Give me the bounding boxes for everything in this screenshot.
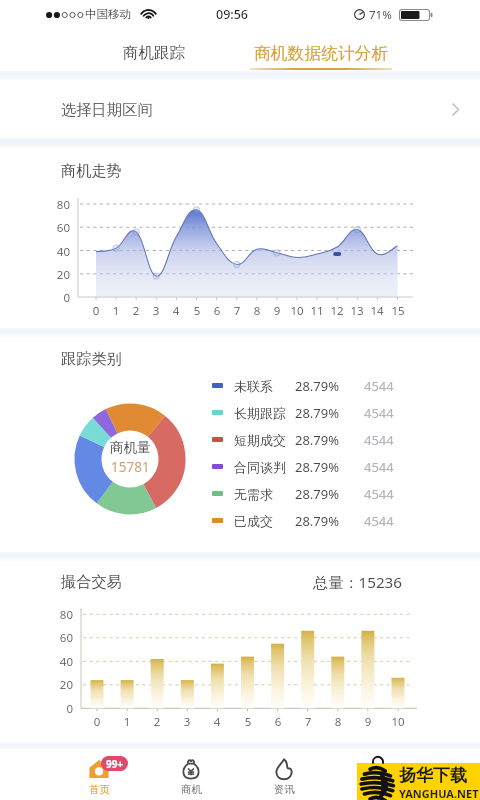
staticText: 无需求 xyxy=(234,486,295,502)
button[interactable]: 资讯 xyxy=(256,749,312,800)
staticText: 15 xyxy=(388,303,408,319)
staticText: 商机 xyxy=(181,783,202,796)
staticText: 28.79% xyxy=(295,377,364,395)
staticText: 未联系 xyxy=(234,378,295,394)
button[interactable]: 商机数据统计分析 xyxy=(245,34,397,72)
staticText: 09:56 xyxy=(216,6,249,23)
staticText: 商机量 xyxy=(110,439,151,456)
staticText: 合同谈判 xyxy=(234,459,295,475)
button[interactable]: 商机跟踪 xyxy=(112,34,196,72)
staticText: 5 xyxy=(236,714,260,730)
staticText: 跟踪类别 xyxy=(61,349,122,368)
staticText: 14 xyxy=(367,303,387,319)
staticText: 选择日期区间 xyxy=(61,100,153,119)
staticText: 已成交 xyxy=(234,513,295,529)
staticText: 首页 xyxy=(89,783,110,796)
staticText: 5 xyxy=(187,303,207,319)
button[interactable]: 合同谈判 xyxy=(212,453,394,480)
staticText: 4544 xyxy=(364,485,394,503)
staticText: 7 xyxy=(227,303,247,319)
other: 展开 xyxy=(451,102,460,117)
staticText: YANGHUA.NET xyxy=(399,786,479,800)
staticText: 10 xyxy=(287,303,307,319)
staticText: 20 xyxy=(43,677,73,693)
staticText: 28.79% xyxy=(295,512,364,530)
button[interactable]: 已成交 xyxy=(212,507,394,534)
staticText: 80 xyxy=(43,607,73,623)
staticText: 3 xyxy=(175,714,199,730)
staticText: 13 xyxy=(347,303,367,319)
staticText: 短期成交 xyxy=(234,432,295,448)
staticText: 撮合交易 xyxy=(61,572,122,591)
staticText: 商机走势 xyxy=(61,161,122,180)
staticText: 28.79% xyxy=(295,458,364,476)
staticText: 4544 xyxy=(364,377,394,395)
staticText: 总量：15236 xyxy=(313,572,402,593)
staticText: 7 xyxy=(296,714,320,730)
staticText: 10 xyxy=(386,714,410,730)
staticText: 长期跟踪 xyxy=(234,405,295,421)
staticText: 12 xyxy=(327,303,347,319)
staticText: 28.79% xyxy=(295,431,364,449)
staticText: 2 xyxy=(126,303,146,319)
staticText: 商机跟踪 xyxy=(123,43,185,63)
staticText: 60 xyxy=(43,630,73,646)
button[interactable]: 未联系 xyxy=(212,372,394,399)
staticText: 15781 xyxy=(111,458,150,476)
staticText: 9 xyxy=(356,714,380,730)
staticText: 28.79% xyxy=(295,404,364,422)
staticText: 0 xyxy=(86,303,106,319)
button[interactable]: 商机 xyxy=(163,749,219,800)
staticText: 4 xyxy=(166,303,186,319)
staticText: 1 xyxy=(106,303,126,319)
staticText: 4544 xyxy=(364,512,394,530)
staticText: 11 xyxy=(307,303,327,319)
staticText: 4544 xyxy=(364,431,394,449)
button[interactable]: 短期成交 xyxy=(212,426,394,453)
button[interactable]: 无需求 xyxy=(212,480,394,507)
staticText: 80 xyxy=(40,197,70,213)
staticText: 40 xyxy=(43,654,73,670)
staticText: 99+ xyxy=(106,757,124,771)
button[interactable]: 选择日期区间 xyxy=(0,80,480,138)
staticText: 28.79% xyxy=(295,485,364,503)
staticText: 商机数据统计分析 xyxy=(254,43,389,64)
staticText: 4544 xyxy=(364,458,394,476)
staticText: 1 xyxy=(115,714,139,730)
staticText: 9 xyxy=(267,303,287,319)
staticText: 8 xyxy=(247,303,267,319)
staticText: 扬华下载 xyxy=(399,765,467,786)
staticText: 3 xyxy=(146,303,166,319)
staticText: 6 xyxy=(207,303,227,319)
staticText: 4544 xyxy=(364,404,394,422)
staticText: 中国移动 xyxy=(85,7,131,21)
button[interactable]: 长期跟踪 xyxy=(212,399,394,426)
staticText: 20 xyxy=(40,267,70,283)
staticText: 6 xyxy=(266,714,290,730)
button[interactable]: 首页 xyxy=(71,749,127,800)
staticText: 60 xyxy=(40,220,70,236)
staticText: 0 xyxy=(43,701,73,717)
staticText: 0 xyxy=(40,290,70,306)
staticText: 71% xyxy=(369,7,392,23)
staticText: 4 xyxy=(205,714,229,730)
staticText: 0 xyxy=(85,714,109,730)
staticText: 8 xyxy=(326,714,350,730)
staticText: 40 xyxy=(40,244,70,260)
staticText: 资讯 xyxy=(274,783,295,796)
staticText: 2 xyxy=(145,714,169,730)
